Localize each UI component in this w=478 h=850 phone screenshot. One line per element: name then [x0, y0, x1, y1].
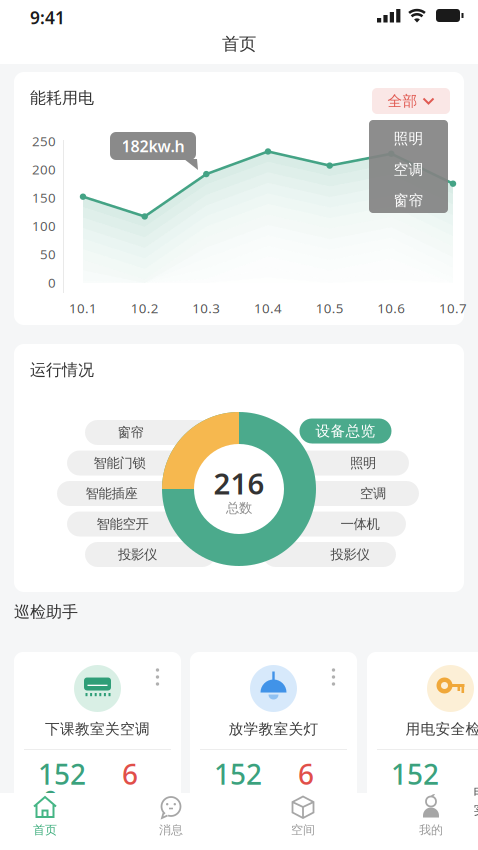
staticText: 152: [391, 755, 439, 793]
staticText: 9:41: [30, 6, 65, 29]
staticText: 投影仪: [330, 546, 369, 563]
button[interactable]: 空调: [369, 154, 448, 185]
button[interactable]: 消息: [139, 793, 203, 845]
staticText: 152: [38, 755, 86, 793]
staticText: 250: [32, 132, 56, 150]
staticText: 10.3: [192, 299, 220, 317]
staticText: 智能插座: [85, 485, 137, 502]
staticText: 空间: [291, 823, 315, 837]
staticText: 200: [32, 160, 56, 178]
staticText: 10.5: [316, 299, 344, 317]
staticText: 实: [473, 801, 478, 818]
staticText: 下课教室关空调: [45, 720, 150, 738]
button[interactable]: 空间: [271, 793, 335, 845]
staticText: 消息: [159, 823, 183, 837]
button[interactable]: 用电安全检查: [367, 652, 478, 807]
button[interactable]: 首页: [13, 793, 77, 845]
staticText: 152: [214, 755, 262, 793]
staticText: 0: [48, 274, 56, 291]
staticText: 智能空开: [96, 516, 148, 532]
button[interactable]: 下课教室关空调: [14, 652, 181, 807]
staticText: 我的: [419, 823, 443, 837]
button[interactable]: 放学教室关灯: [190, 652, 357, 807]
staticText: 窗帘: [117, 424, 143, 441]
button[interactable]: 照明: [369, 123, 448, 154]
staticText: 首页: [33, 823, 57, 837]
staticText: 50: [40, 245, 56, 263]
button[interactable]: 窗帘: [369, 185, 448, 216]
staticText: 6: [298, 755, 314, 793]
staticText: 10.2: [131, 299, 159, 317]
button[interactable]: 我的: [399, 793, 463, 845]
staticText: 一体机: [340, 516, 379, 532]
staticText: 照明: [350, 455, 376, 471]
staticText: 216: [213, 463, 264, 502]
staticText: 10.7: [439, 299, 467, 317]
staticText: 电: [473, 784, 478, 800]
staticText: 182kw.h: [121, 135, 184, 157]
staticText: 窗帘: [393, 191, 423, 209]
staticText: 运行情况: [30, 360, 94, 380]
staticText: 150: [32, 189, 56, 206]
staticText: 全部: [387, 92, 417, 110]
staticText: 智能门锁: [93, 455, 145, 471]
staticText: 设备总览: [315, 422, 375, 440]
staticText: 能耗用电: [30, 88, 94, 108]
staticText: 总数: [226, 500, 252, 516]
staticText: 10.4: [254, 299, 282, 317]
staticText: 照明: [393, 129, 423, 147]
staticText: 0: [42, 782, 58, 820]
button[interactable]: 全部: [372, 88, 450, 114]
staticText: 10.1: [69, 299, 97, 317]
staticText: 空调: [393, 160, 423, 178]
staticText: 巡检助手: [14, 602, 78, 622]
staticText: 投影仪: [118, 546, 157, 563]
staticText: 10.6: [377, 299, 405, 317]
staticText: 100: [32, 217, 56, 235]
button[interactable]: 设备总览: [299, 418, 391, 443]
staticText: 用电安全检查: [405, 720, 478, 738]
staticText: 6: [122, 755, 138, 793]
staticText: 空调: [360, 485, 386, 502]
staticText: 首页: [222, 33, 256, 55]
staticText: 放学教室关灯: [228, 720, 318, 738]
